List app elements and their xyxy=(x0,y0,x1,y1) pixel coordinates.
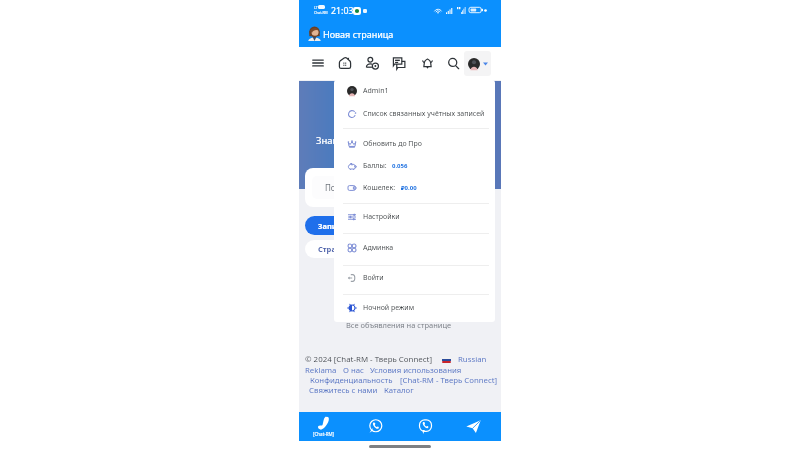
button[interactable]: WhatsApp xyxy=(356,412,394,441)
staticText: Поиск по сайту xyxy=(325,182,384,193)
staticText: [Chat-RM] xyxy=(313,431,335,437)
staticText: Все объявления на странице xyxy=(346,320,452,330)
button[interactable]: Menu xyxy=(308,53,328,73)
button[interactable]: Telegram xyxy=(454,412,492,441)
button[interactable]: Конфиденциальность xyxy=(310,375,393,385)
button[interactable]: Viber xyxy=(406,412,444,441)
staticText: Записаться на встречу xyxy=(318,221,406,231)
button[interactable]: Поиск по сайту xyxy=(312,176,488,199)
button[interactable]: Call xyxy=(305,412,343,441)
staticText: Новая страница xyxy=(323,28,394,40)
button[interactable]: Search xyxy=(443,53,463,73)
staticText: Admin1 xyxy=(363,86,389,96)
staticText: Настройки xyxy=(363,212,400,222)
button[interactable]: Home xyxy=(335,53,355,73)
staticText: Кошелек: xyxy=(363,183,396,193)
button[interactable]: Admin1 xyxy=(334,81,495,101)
staticText: 21:03 xyxy=(331,5,354,17)
staticText: © 2024 [Chat-RM - Тверь Connect] xyxy=(305,354,433,365)
button[interactable]: Кошелек: xyxy=(334,178,495,198)
button[interactable]: Messages xyxy=(389,53,409,73)
staticText: Список связанных учётных записей xyxy=(363,109,485,119)
button[interactable]: Страница объявлений xyxy=(305,240,495,258)
staticText: LT xyxy=(314,5,318,10)
staticText: Chat-RM xyxy=(314,10,328,15)
button[interactable]: Условия использования xyxy=(370,365,462,375)
button[interactable]: Войти xyxy=(334,268,495,288)
staticText: Ночной режим xyxy=(363,303,415,313)
staticText: Обновить до Про xyxy=(363,139,422,149)
button[interactable]: Notifications xyxy=(417,53,437,73)
staticText: Баллы: xyxy=(363,161,387,171)
button[interactable]: Ночной режим xyxy=(334,298,495,318)
button[interactable]: Russian xyxy=(458,354,487,365)
button[interactable]: Список связанных учётных записей xyxy=(334,104,495,124)
staticText: 0.056 xyxy=(392,162,408,170)
staticText: ₽0.00 xyxy=(401,184,417,192)
button[interactable]: Свяжитесь с нами xyxy=(309,385,378,395)
button[interactable]: Reklama xyxy=(305,365,337,375)
button[interactable]: [Chat-RM - Тверь Connect] xyxy=(400,375,498,385)
button[interactable]: О нас xyxy=(343,365,364,375)
button[interactable]: Админка xyxy=(334,238,495,258)
staticText: Страница объявлений xyxy=(318,244,405,254)
staticText: Знакомства и общение xyxy=(316,134,424,147)
staticText: Админка xyxy=(363,243,394,253)
button[interactable]: Add contact xyxy=(362,53,382,73)
staticText: Войти xyxy=(363,273,384,283)
button[interactable]: Account menu xyxy=(464,51,491,76)
button[interactable]: Настройки xyxy=(334,207,495,227)
button[interactable]: Баллы: xyxy=(334,156,495,176)
button[interactable]: Каталог xyxy=(384,385,414,395)
button[interactable]: Обновить до Про xyxy=(334,134,495,154)
button[interactable]: Записаться на встречу xyxy=(305,216,495,235)
